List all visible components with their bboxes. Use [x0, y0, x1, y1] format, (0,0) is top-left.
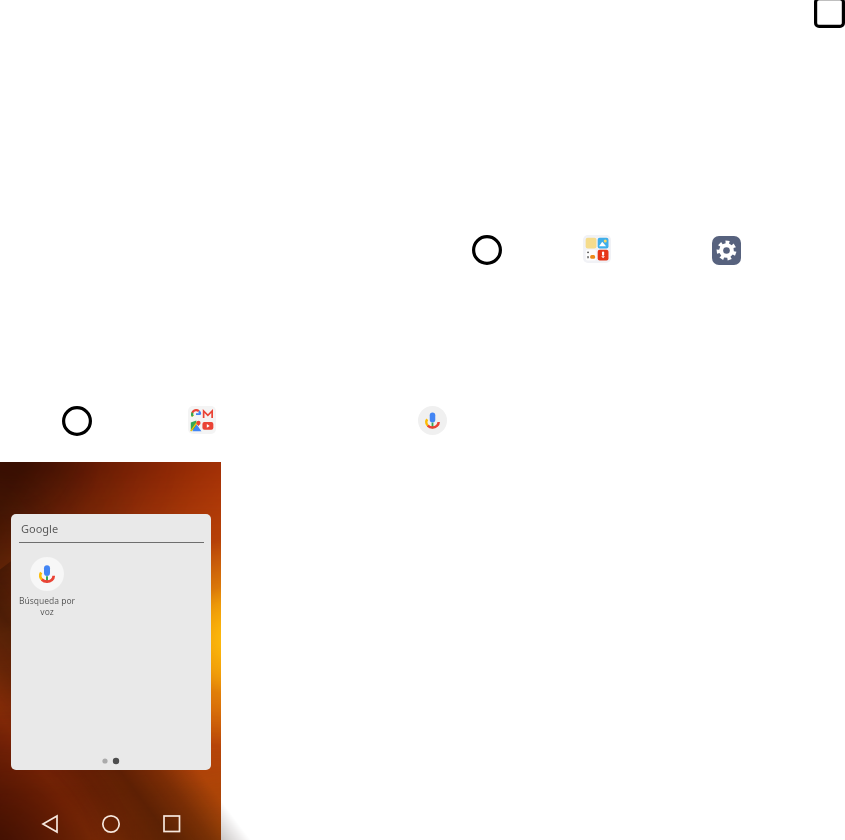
button[interactable]: Home	[472, 235, 502, 265]
button[interactable]: Tools folder	[583, 235, 611, 263]
button[interactable]: Recent apps	[160, 812, 184, 836]
button[interactable]: Voice search widget	[13, 557, 81, 613]
button[interactable]: Google	[11, 514, 211, 770]
staticText: Búsqueda por voz	[17, 595, 77, 617]
button[interactable]: Voice search	[418, 406, 447, 435]
button[interactable]: Recent apps	[814, 0, 845, 28]
button[interactable]: Settings	[712, 236, 741, 265]
button[interactable]: Home	[99, 812, 123, 836]
staticText: Google	[21, 521, 59, 536]
button[interactable]: Back	[38, 812, 62, 836]
button[interactable]: Home	[62, 406, 92, 436]
button[interactable]: Google folder	[188, 406, 216, 434]
